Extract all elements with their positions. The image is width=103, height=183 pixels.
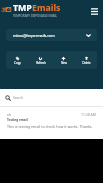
- button[interactable]: nb: [0, 107, 103, 129]
- button[interactable]: Refresh: [29, 52, 52, 69]
- staticText: Refresh: [36, 61, 46, 65]
- staticText: mirau@tmpermails.com: [13, 33, 55, 38]
- staticText: New: [61, 61, 67, 65]
- staticText: TMP: [13, 2, 32, 14]
- staticText: nb: [7, 113, 11, 117]
- button[interactable]: Copy: [6, 52, 29, 69]
- button[interactable]: Delete: [75, 52, 97, 69]
- staticText: Copy: [14, 61, 21, 65]
- staticText: TEMPORARY DISPOSABLE EMAIL: [13, 14, 58, 18]
- staticText: Emails: [32, 2, 61, 14]
- staticText: This is testing email to check how it wo…: [7, 124, 93, 129]
- button[interactable]: Menu: [87, 4, 101, 18]
- button[interactable]: Search: [0, 89, 103, 106]
- staticText: 11:38 AM: [81, 112, 96, 117]
- staticText: Delete: [82, 61, 91, 65]
- button[interactable]: mirau@tmpermails.com: [6, 29, 97, 41]
- button[interactable]: New: [52, 52, 75, 69]
- staticText: Testing email: [7, 118, 28, 122]
- staticText: Search: [13, 96, 23, 100]
